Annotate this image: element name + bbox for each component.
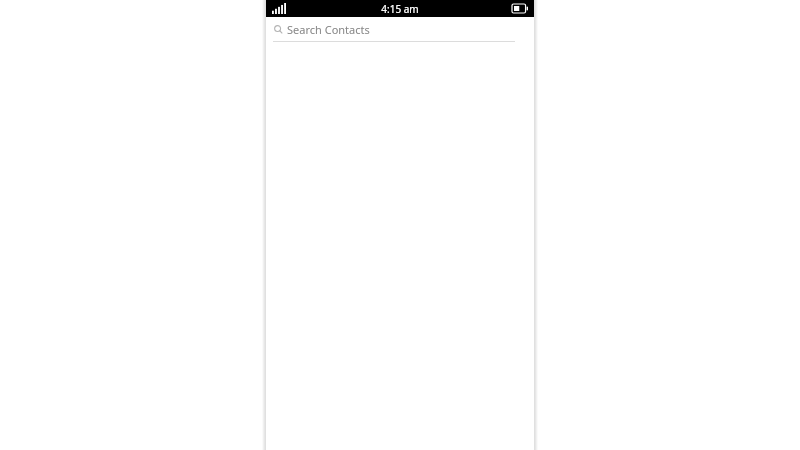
other: Search xyxy=(274,25,283,34)
staticText: Search Contacts xyxy=(287,22,370,37)
other: Cellular signal strength xyxy=(272,3,286,14)
button[interactable]: Search xyxy=(266,17,534,42)
other: Battery level xyxy=(512,4,528,13)
staticText: 4:15 am xyxy=(381,2,419,16)
